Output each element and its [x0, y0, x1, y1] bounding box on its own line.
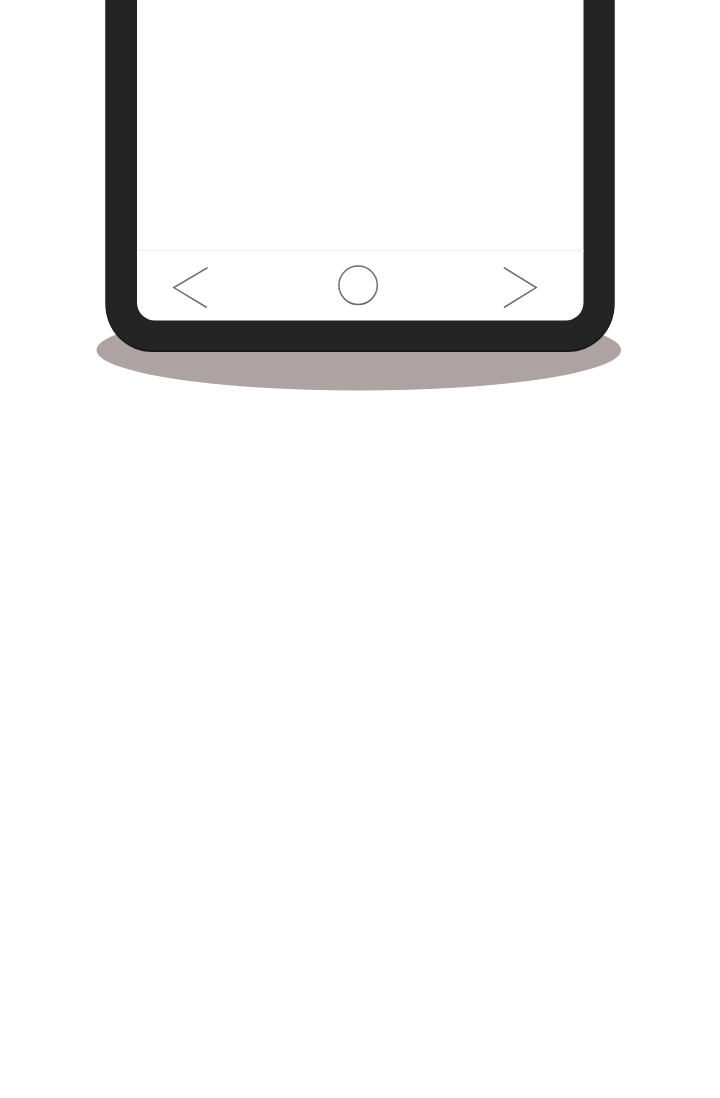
button[interactable]: Recent apps — [482, 253, 558, 320]
button[interactable]: Home — [320, 253, 396, 320]
button[interactable]: Back — [152, 253, 228, 320]
